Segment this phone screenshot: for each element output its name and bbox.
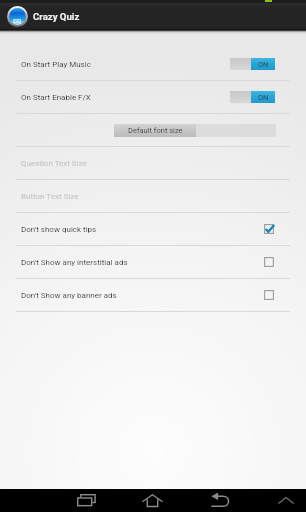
button[interactable]: Don't Show any interstitial ads — [0, 246, 306, 278]
button[interactable]: CQ — [0, 3, 306, 30]
staticText: Don't show quick tips — [21, 225, 97, 234]
button[interactable]: Question Text Size — [0, 147, 306, 179]
staticText: On Start Play Music — [21, 60, 91, 69]
staticText: Button Text Size — [21, 192, 79, 201]
button[interactable]: Back — [205, 489, 234, 512]
staticText: Crazy Quiz — [33, 11, 80, 22]
staticText: Question Text Size — [21, 159, 87, 168]
staticText: ON — [258, 93, 269, 102]
button[interactable]: Don't show quick tips — [0, 213, 306, 245]
staticText: ON — [258, 60, 269, 69]
staticText: On Start Enable F/X — [21, 93, 91, 102]
button[interactable]: Don't Show any banner ads — [0, 279, 306, 311]
button[interactable]: Show menu — [271, 489, 300, 512]
staticText: Don't Show any interstitial ads — [21, 258, 128, 267]
button[interactable]: Recent apps — [72, 489, 101, 512]
button[interactable]: On Start Play Music — [0, 48, 306, 80]
staticText: Default font size — [128, 126, 183, 135]
staticText: CQ — [13, 17, 22, 24]
button[interactable]: Button Text Size — [0, 180, 306, 212]
button[interactable]: Home — [138, 489, 167, 512]
button[interactable]: Default font size — [114, 124, 196, 137]
staticText: Don't Show any banner ads — [21, 291, 117, 300]
button[interactable]: On Start Enable F/X — [0, 81, 306, 113]
